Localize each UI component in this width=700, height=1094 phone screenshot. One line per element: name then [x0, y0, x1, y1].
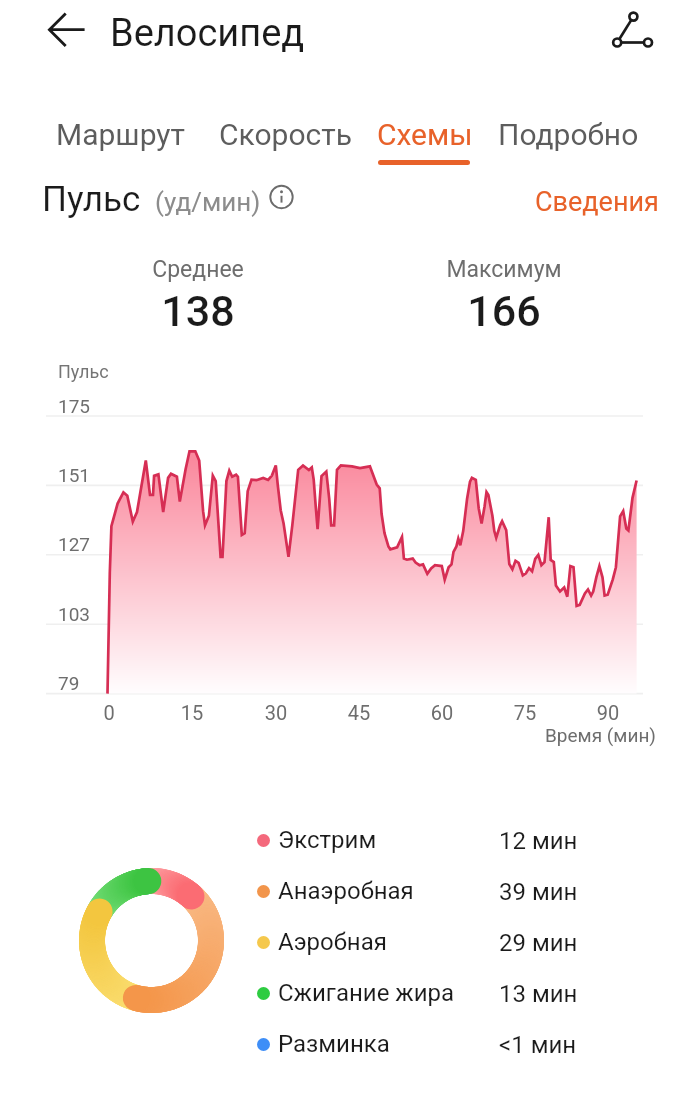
button[interactable]: Share [600, 2, 660, 62]
staticText: 90 [568, 701, 648, 724]
staticText: 15 [152, 701, 232, 724]
button[interactable]: Экстрим [250, 814, 580, 866]
staticText: (уд/мин) [155, 187, 261, 217]
staticText: Пульс [42, 179, 141, 220]
staticText: Аэробная [278, 928, 387, 956]
staticText: 13 мин [499, 980, 578, 1008]
staticText: Скорость [219, 117, 352, 152]
button[interactable]: Аэробная [250, 916, 580, 968]
staticText: Среднее [68, 256, 328, 283]
staticText: Разминка [278, 1030, 390, 1058]
staticText: 175 [58, 395, 91, 417]
staticText: 12 мин [499, 827, 578, 855]
button[interactable]: Info [266, 182, 298, 214]
button[interactable]: Сжигание жира [250, 967, 580, 1019]
staticText: 151 [58, 464, 91, 486]
button[interactable]: Сведения [523, 174, 647, 206]
staticText: 60 [402, 701, 482, 724]
button[interactable]: Разминка [250, 1018, 580, 1070]
staticText: 30 [236, 701, 316, 724]
staticText: 45 [319, 701, 399, 724]
staticText: Сжигание жира [278, 979, 455, 1007]
staticText: 39 мин [499, 878, 578, 906]
button[interactable]: Схемы [367, 108, 463, 164]
button[interactable]: Скорость [209, 108, 342, 164]
staticText: <1 мин [499, 1031, 577, 1059]
staticText: Велосипед [110, 11, 305, 56]
staticText: 79 [58, 672, 80, 694]
staticText: Время (мин) [545, 724, 656, 746]
staticText: 166 [374, 286, 634, 336]
button[interactable]: Анаэробная [250, 865, 580, 917]
staticText: Схемы [377, 117, 473, 152]
button[interactable]: Back [40, 3, 100, 63]
staticText: 138 [68, 286, 328, 336]
staticText: Сведения [535, 186, 659, 218]
staticText: Максимум [374, 256, 634, 283]
staticText: Подробно [498, 117, 639, 152]
staticText: Экстрим [278, 826, 377, 854]
staticText: 103 [58, 603, 91, 625]
staticText: 75 [485, 701, 565, 724]
staticText: Пульс [58, 361, 109, 382]
button[interactable]: Маршрут [46, 108, 175, 164]
staticText: Анаэробная [278, 877, 414, 905]
staticText: 0 [69, 701, 149, 724]
staticText: 127 [58, 533, 91, 555]
staticText: Маршрут [56, 117, 185, 152]
button[interactable]: Подробно [488, 108, 629, 164]
staticText: 29 мин [499, 929, 578, 957]
